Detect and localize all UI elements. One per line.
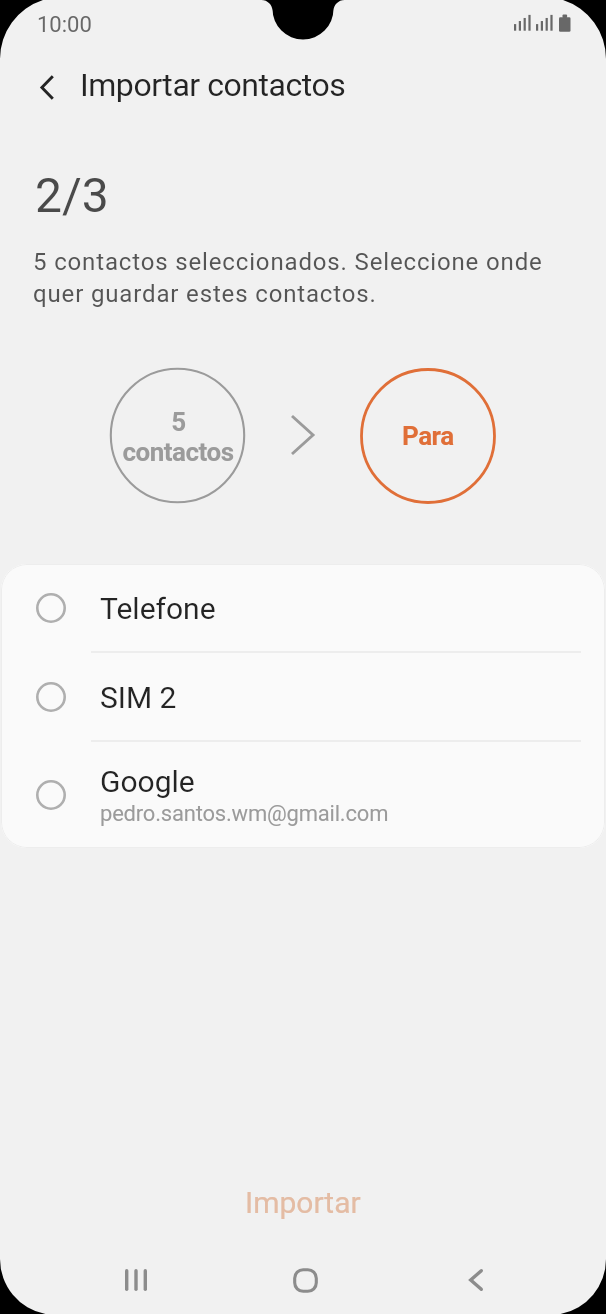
button[interactable]: Telefone	[1, 564, 605, 651]
staticText: SIM 2	[100, 680, 177, 715]
button[interactable]: Google	[1, 742, 605, 848]
staticText: 2/3	[35, 167, 109, 223]
button[interactable]: SIM 2	[1, 653, 605, 740]
button[interactable]: Back	[17, 58, 75, 117]
button[interactable]: Importar	[0, 1170, 606, 1234]
staticText: Google	[100, 764, 195, 799]
button[interactable]: Home	[204, 1240, 406, 1314]
staticText: Importar	[245, 1185, 361, 1220]
staticText: Importar contactos	[80, 66, 346, 104]
button[interactable]: Recent apps	[35, 1240, 237, 1314]
staticText: Telefone	[100, 591, 216, 626]
staticText: pedro.santos.wm@gmail.com	[100, 801, 389, 827]
button[interactable]: Back	[375, 1240, 577, 1314]
staticText: Para	[402, 421, 454, 451]
staticText: 10:00	[37, 12, 92, 38]
staticText: 5 contactos seleccionados. Seleccione on…	[33, 248, 553, 307]
staticText: contactos	[122, 437, 234, 467]
staticText: 5	[171, 407, 186, 437]
